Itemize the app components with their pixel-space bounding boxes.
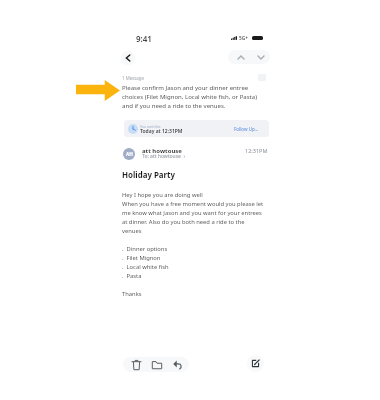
staticText: . Dinner options xyxy=(122,245,168,253)
staticText: 5G+ xyxy=(239,35,248,42)
staticText: Follow Up... xyxy=(234,126,259,132)
staticText: When you have a free moment would you pl… xyxy=(122,200,264,235)
staticText: 9:41 xyxy=(136,33,152,44)
staticText: 1 Message xyxy=(122,75,144,81)
staticText: Thanks xyxy=(122,290,142,298)
staticText: Today at 12:31PM xyxy=(140,128,183,135)
button[interactable]: Compose new message xyxy=(247,355,264,372)
button[interactable]: Next message xyxy=(253,50,269,64)
staticText: att howtouse xyxy=(142,147,182,155)
staticText: 12:31PM xyxy=(245,147,268,154)
staticText: . Filet Mignon xyxy=(122,254,161,262)
staticText: . Local white fish xyxy=(122,263,169,271)
button[interactable]: Reply xyxy=(166,357,188,372)
staticText: Hey I hope you are doing well xyxy=(122,191,203,199)
staticText: AH xyxy=(126,151,133,158)
staticText: Please confirm Jason and your dinner ent… xyxy=(122,84,260,109)
staticText: You sent this xyxy=(140,124,161,129)
button[interactable]: Move to folder xyxy=(146,357,168,372)
staticText: . Pasta xyxy=(122,272,142,280)
button[interactable]: You sent this xyxy=(124,120,269,137)
staticText: To: att howtouse › xyxy=(142,153,186,160)
button[interactable]: Previous message xyxy=(233,50,249,64)
button[interactable]: Back xyxy=(121,51,135,65)
button[interactable]: Delete xyxy=(125,357,147,372)
staticText: Holiday Party xyxy=(122,170,176,181)
